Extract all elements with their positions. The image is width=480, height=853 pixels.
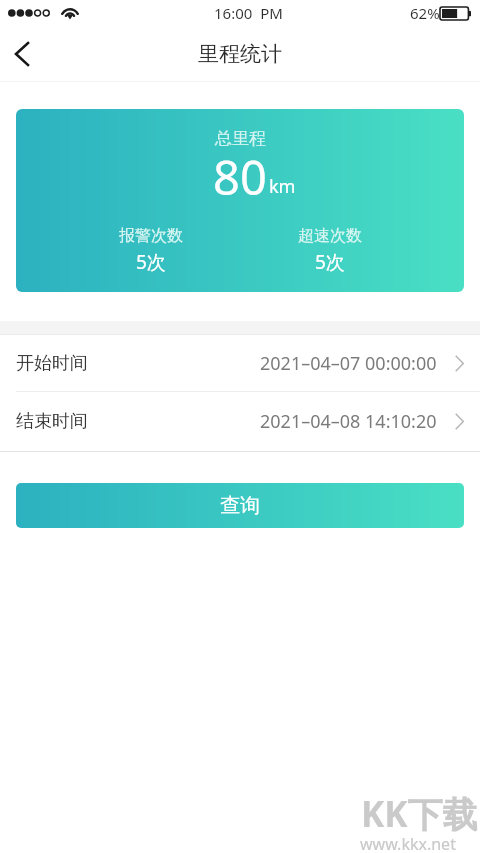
staticText: 里程统计: [198, 41, 282, 67]
staticText: 报警次数: [119, 226, 183, 246]
staticText: 2021–04–08 14:10:20: [260, 409, 437, 434]
button[interactable]: 开始时间: [0, 335, 480, 391]
other: Battery 62 percent: [440, 7, 471, 20]
staticText: 5次: [315, 249, 345, 275]
button[interactable]: 报警次数: [61, 226, 240, 275]
staticText: km: [269, 174, 296, 199]
staticText: 2021–04–07 00:00:00: [260, 351, 437, 376]
staticText: www.kkx.net: [360, 833, 456, 853]
staticText: 80: [213, 145, 267, 209]
staticText: 5次: [136, 249, 166, 275]
staticText: 开始时间: [16, 352, 88, 375]
button[interactable]: 总里程: [16, 109, 464, 292]
staticText: KK下载: [361, 790, 478, 838]
staticText: 超速次数: [298, 226, 362, 246]
staticText: 62%: [410, 3, 440, 23]
staticText: 总里程: [215, 128, 266, 149]
button[interactable]: 超速次数: [240, 226, 419, 275]
button[interactable]: 结束时间: [0, 392, 480, 451]
button[interactable]: Back: [0, 32, 44, 76]
staticText: 结束时间: [16, 410, 88, 433]
button[interactable]: 查询: [16, 483, 464, 528]
staticText: 查询: [220, 493, 260, 518]
staticText: 16:00 PM: [214, 3, 283, 23]
other: Signal and Wi-Fi: [8, 3, 88, 23]
